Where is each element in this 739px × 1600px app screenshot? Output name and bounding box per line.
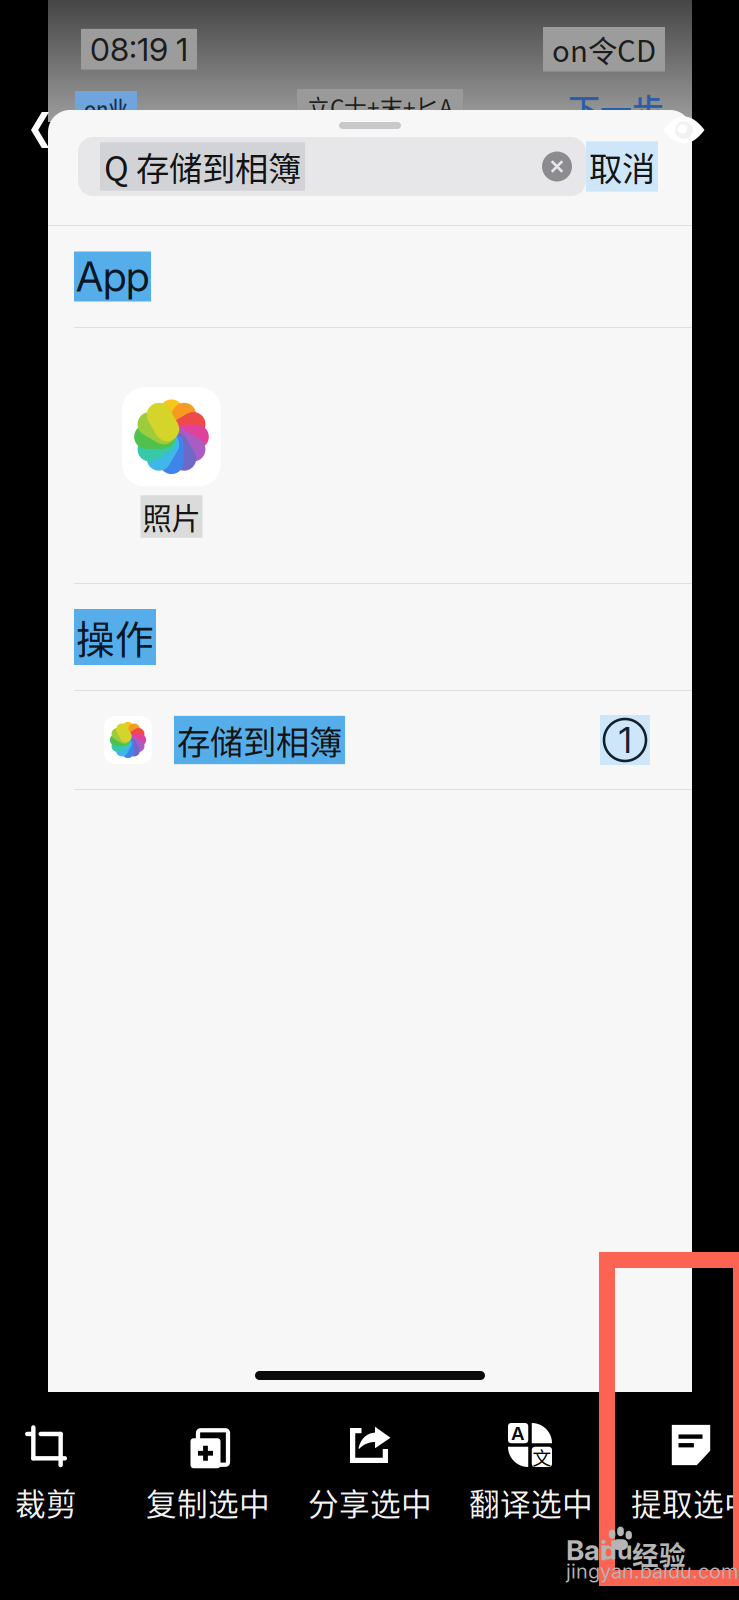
staticText: 经验: [632, 1534, 686, 1573]
staticText: du: [601, 1535, 633, 1566]
staticText: 操作: [76, 609, 154, 665]
button[interactable]: Preview: [660, 110, 708, 150]
staticText: jingyan.baidu.com: [566, 1559, 738, 1583]
staticText: 裁剪: [15, 1480, 77, 1524]
staticText: 存储到相簿: [177, 716, 342, 764]
button[interactable]: 照片: [74, 373, 221, 538]
button[interactable]: 存储到相簿: [48, 691, 692, 789]
staticText: 文: [532, 1443, 551, 1470]
staticText: 照片: [142, 495, 200, 538]
staticText: 提取选中: [631, 1480, 739, 1524]
button[interactable]: 取消: [586, 141, 658, 192]
button[interactable]: 分享选中: [295, 1422, 445, 1542]
staticText: 翻译选中: [469, 1480, 593, 1524]
button[interactable]: 复制选中: [133, 1422, 283, 1542]
staticText: A: [511, 1422, 525, 1444]
button[interactable]: A: [456, 1422, 606, 1542]
staticText: 1: [618, 718, 631, 762]
staticText: 立C士+末+匕A: [307, 90, 453, 123]
staticText: 取消: [589, 142, 655, 191]
button[interactable]: Back: [24, 106, 56, 154]
staticText: App: [76, 251, 149, 301]
staticText: Bai: [566, 1533, 607, 1567]
staticText: 复制选中: [146, 1480, 270, 1524]
button[interactable]: 提取选中: [618, 1422, 739, 1542]
staticText: 分享选中: [308, 1480, 432, 1524]
staticText: on业: [84, 93, 128, 122]
button[interactable]: 裁剪: [0, 1422, 121, 1542]
staticText: Q 存储到相簿: [104, 142, 301, 191]
staticText: on令CD: [552, 28, 656, 70]
button[interactable]: Q 存储到相簿: [78, 137, 586, 196]
staticText: 08:19 1: [90, 30, 188, 69]
staticText: 下一步: [568, 85, 664, 131]
